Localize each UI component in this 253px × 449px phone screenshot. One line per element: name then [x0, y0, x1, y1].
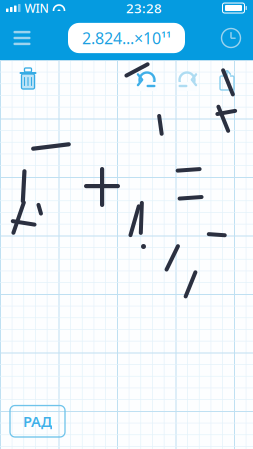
button[interactable]: Undo: [127, 60, 167, 98]
button[interactable]: Menu: [0, 16, 44, 60]
staticText: 11: [161, 28, 171, 40]
staticText: WIN: [24, 0, 48, 16]
button[interactable]: History: [209, 16, 253, 60]
button[interactable]: 2.824...×10: [68, 23, 185, 53]
button[interactable]: Share: [207, 60, 247, 98]
button[interactable]: Redo: [167, 60, 207, 98]
staticText: 2.824...×10: [82, 27, 161, 49]
staticText: РАД: [23, 411, 52, 431]
staticText: 23:28: [126, 0, 162, 17]
button[interactable]: Delete: [6, 60, 50, 98]
button[interactable]: РАД: [10, 405, 65, 437]
